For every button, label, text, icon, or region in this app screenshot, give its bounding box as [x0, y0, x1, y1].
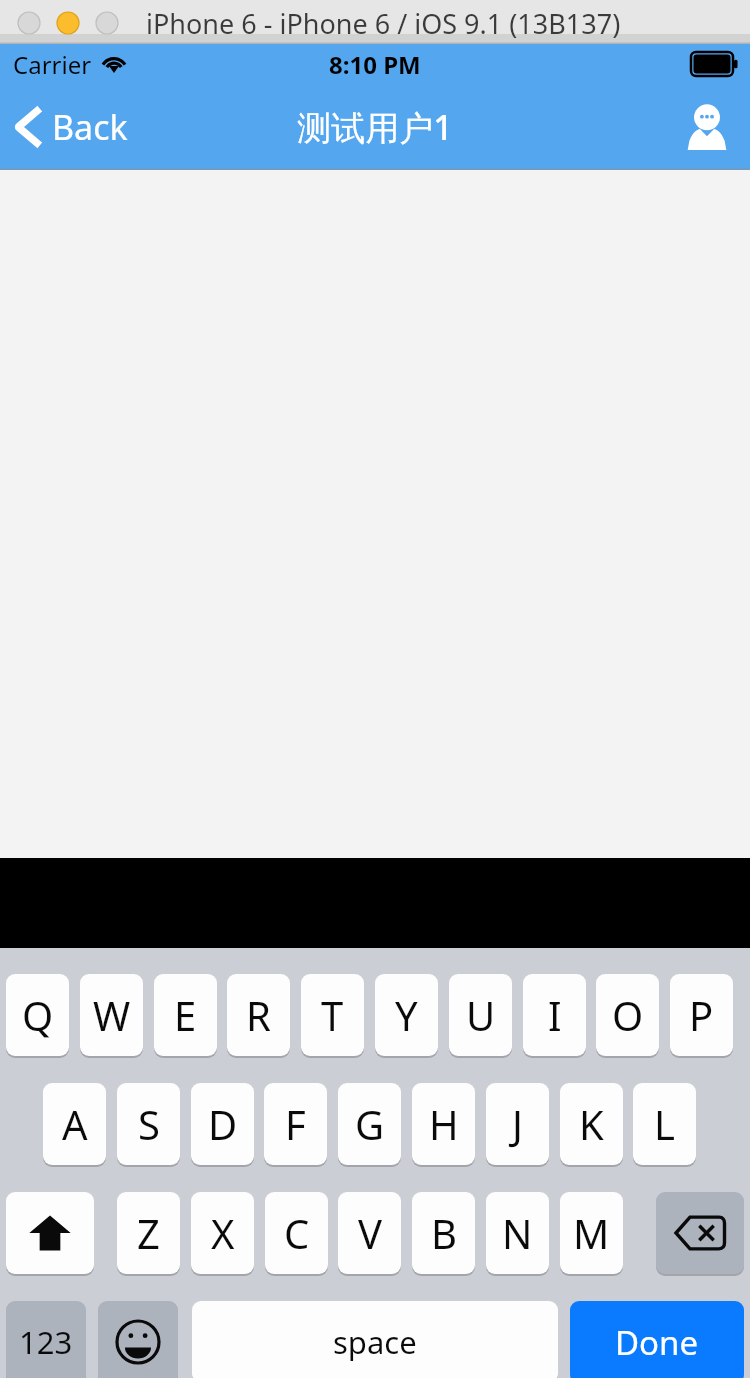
staticText: F — [285, 1097, 306, 1151]
staticText: S — [138, 1097, 160, 1151]
staticText: iPhone 6 - iPhone 6 / iOS 9.1 (13B137) — [146, 5, 621, 42]
staticText: Done — [615, 1320, 699, 1365]
button[interactable]: 123 — [6, 1301, 86, 1378]
button[interactable]: Y — [375, 974, 438, 1056]
staticText: A — [62, 1097, 88, 1151]
button[interactable]: Back — [0, 84, 195, 170]
button[interactable]: N — [486, 1192, 549, 1274]
staticText: W — [93, 988, 131, 1042]
staticText: 8:10 PM — [329, 48, 421, 81]
staticText: R — [246, 988, 271, 1042]
staticText: Carrier — [13, 48, 92, 81]
staticText: T — [321, 988, 344, 1042]
staticText: K — [579, 1097, 604, 1151]
button[interactable]: I — [523, 974, 586, 1056]
staticText: Q — [22, 988, 54, 1042]
button[interactable]: Backspace — [656, 1192, 744, 1274]
button[interactable]: U — [449, 974, 512, 1056]
staticText: C — [284, 1206, 310, 1260]
button[interactable]: W — [80, 974, 143, 1056]
button[interactable]: S — [117, 1083, 180, 1165]
button[interactable]: Shift — [6, 1192, 94, 1274]
staticText: X — [211, 1206, 235, 1260]
staticText: N — [502, 1206, 533, 1260]
staticText: B — [431, 1206, 457, 1260]
button[interactable]: M — [560, 1192, 623, 1274]
staticText: D — [208, 1097, 238, 1151]
staticText: I — [548, 988, 562, 1042]
staticText: H — [429, 1097, 459, 1151]
button[interactable]: B — [412, 1192, 475, 1274]
staticText: M — [573, 1206, 610, 1260]
staticText: G — [355, 1097, 385, 1151]
button[interactable]: Done — [570, 1301, 744, 1378]
button[interactable]: X — [191, 1192, 254, 1274]
button[interactable]: Contact info — [664, 84, 750, 170]
staticText: 123 — [19, 1321, 73, 1363]
staticText: P — [689, 988, 714, 1042]
button[interactable]: space — [192, 1301, 558, 1378]
button[interactable]: F — [264, 1083, 327, 1165]
button[interactable]: H — [412, 1083, 475, 1165]
button[interactable]: Z — [117, 1192, 180, 1274]
button[interactable]: Emoji — [98, 1301, 178, 1378]
staticText: J — [512, 1097, 523, 1151]
button[interactable]: C — [265, 1192, 328, 1274]
staticText: L — [654, 1097, 675, 1151]
button[interactable]: O — [596, 974, 659, 1056]
staticText: Z — [137, 1206, 160, 1260]
staticText: E — [174, 988, 197, 1042]
button[interactable]: L — [633, 1083, 696, 1165]
button[interactable]: T — [301, 974, 364, 1056]
staticText: 测试用户1 — [297, 104, 453, 150]
button[interactable]: J — [486, 1083, 549, 1165]
staticText: Y — [395, 988, 418, 1042]
staticText: V — [358, 1206, 382, 1260]
button[interactable]: D — [191, 1083, 254, 1165]
button[interactable]: E — [154, 974, 217, 1056]
button[interactable]: V — [338, 1192, 401, 1274]
button[interactable]: P — [670, 974, 733, 1056]
staticText: U — [466, 988, 496, 1042]
staticText: O — [612, 988, 644, 1042]
staticText: Back — [52, 104, 128, 150]
button[interactable]: G — [338, 1083, 401, 1165]
button[interactable]: K — [560, 1083, 623, 1165]
button[interactable]: R — [227, 974, 290, 1056]
button[interactable]: Q — [6, 974, 69, 1056]
staticText: space — [333, 1321, 417, 1363]
button[interactable]: A — [43, 1083, 106, 1165]
